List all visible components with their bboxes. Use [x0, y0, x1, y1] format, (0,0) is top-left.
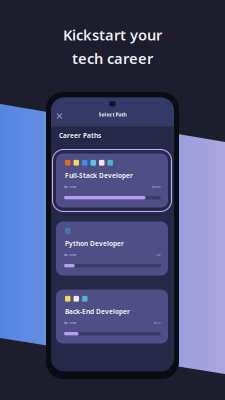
staticText: 1/9 [156, 253, 161, 256]
button[interactable]: Close [52, 109, 66, 123]
staticText: SECTIONS [64, 185, 76, 188]
staticText: 6/13 [154, 321, 161, 324]
button[interactable]: Back-End Developer [56, 289, 168, 343]
staticText: Career Paths [59, 131, 101, 140]
staticText: Select Path [98, 111, 126, 118]
staticText: SECTIONS [64, 253, 76, 256]
staticText: SECTIONS [64, 321, 76, 324]
staticText: tech career [72, 48, 153, 68]
button[interactable]: Full-Stack Developer [56, 153, 168, 207]
staticText: Full-Stack Developer [65, 171, 133, 180]
staticText: Kickstart your [63, 25, 162, 44]
button[interactable]: Python Developer [56, 221, 168, 275]
staticText: 46/50 [152, 185, 161, 188]
staticText: Python Developer [65, 239, 124, 248]
staticText: Back-End Developer [65, 307, 130, 316]
